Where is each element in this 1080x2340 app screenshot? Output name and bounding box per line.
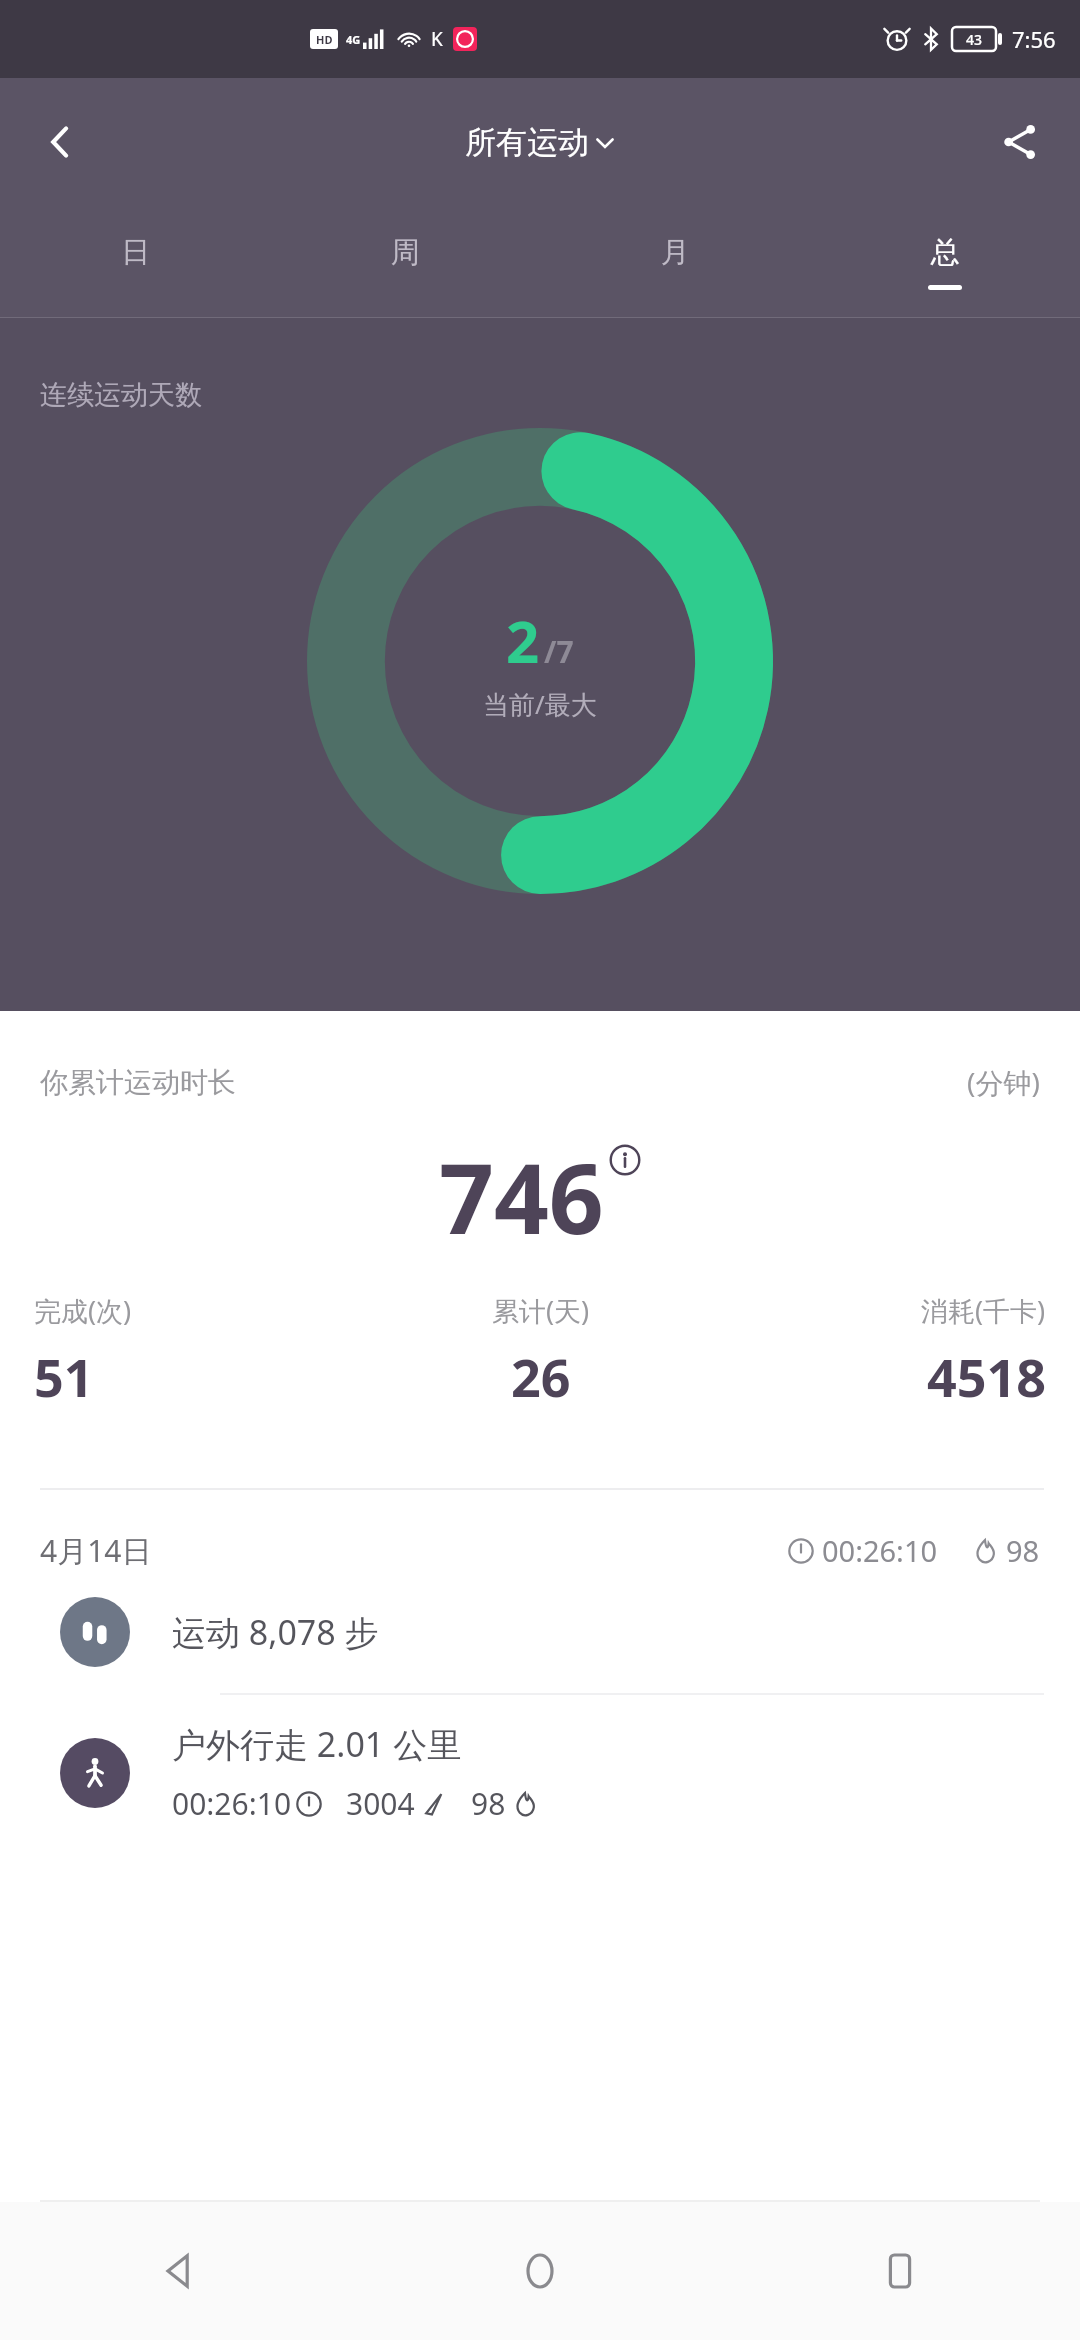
staticText: 日	[121, 234, 150, 271]
staticText: 4月14日	[40, 1530, 152, 1571]
staticText: /7	[544, 631, 574, 672]
staticText: 你累计运动时长	[40, 1065, 236, 1100]
button[interactable]: Home	[360, 2202, 720, 2340]
button[interactable]: Info	[608, 1143, 642, 1177]
staticText: 7:56	[1012, 24, 1056, 54]
staticText: 户外行走 2.01 公里	[172, 1721, 462, 1767]
button[interactable]: 周	[270, 206, 540, 318]
button[interactable]: 日	[0, 206, 270, 318]
staticText: 连续运动天数	[40, 378, 202, 412]
staticText: 3004	[346, 1783, 415, 1824]
button[interactable]: 户外行走 2.01 公里	[0, 1695, 1080, 1850]
button[interactable]: 月	[540, 206, 810, 318]
staticText: 完成(次)	[34, 1292, 132, 1329]
staticText: 运动 8,078 步	[172, 1609, 379, 1655]
staticText: 累计(天)	[492, 1292, 590, 1329]
staticText: 4G	[346, 32, 361, 47]
staticText: 51	[34, 1341, 94, 1412]
button[interactable]: 运动 8,078 步	[0, 1571, 1080, 1693]
staticText: 4518	[927, 1341, 1046, 1412]
staticText: 当前/最大	[483, 686, 597, 722]
button[interactable]: Share	[980, 102, 1060, 182]
button[interactable]: Recents	[720, 2202, 1080, 2340]
staticText: 43	[966, 30, 983, 49]
staticText: 98	[471, 1783, 506, 1824]
staticText: 总	[931, 234, 960, 271]
staticText: 00:26:10	[172, 1783, 292, 1824]
staticText: (分钟)	[967, 1063, 1040, 1101]
staticText: 所有运动	[465, 123, 589, 162]
button[interactable]: 所有运动	[465, 123, 615, 162]
staticText: 26	[511, 1341, 571, 1412]
staticText: HD	[316, 32, 333, 47]
button[interactable]: Back	[0, 2202, 360, 2340]
staticText: 周	[391, 234, 420, 271]
staticText: 98	[1006, 1531, 1040, 1570]
staticText: 2	[506, 601, 540, 680]
button[interactable]: 总	[810, 206, 1080, 318]
staticText: 746	[439, 1131, 604, 1262]
button[interactable]: Back	[20, 102, 100, 182]
staticText: 00:26:10	[822, 1531, 938, 1570]
staticText: 月	[661, 234, 690, 271]
staticText: 消耗(千卡)	[921, 1292, 1046, 1329]
staticText: K	[431, 26, 443, 52]
